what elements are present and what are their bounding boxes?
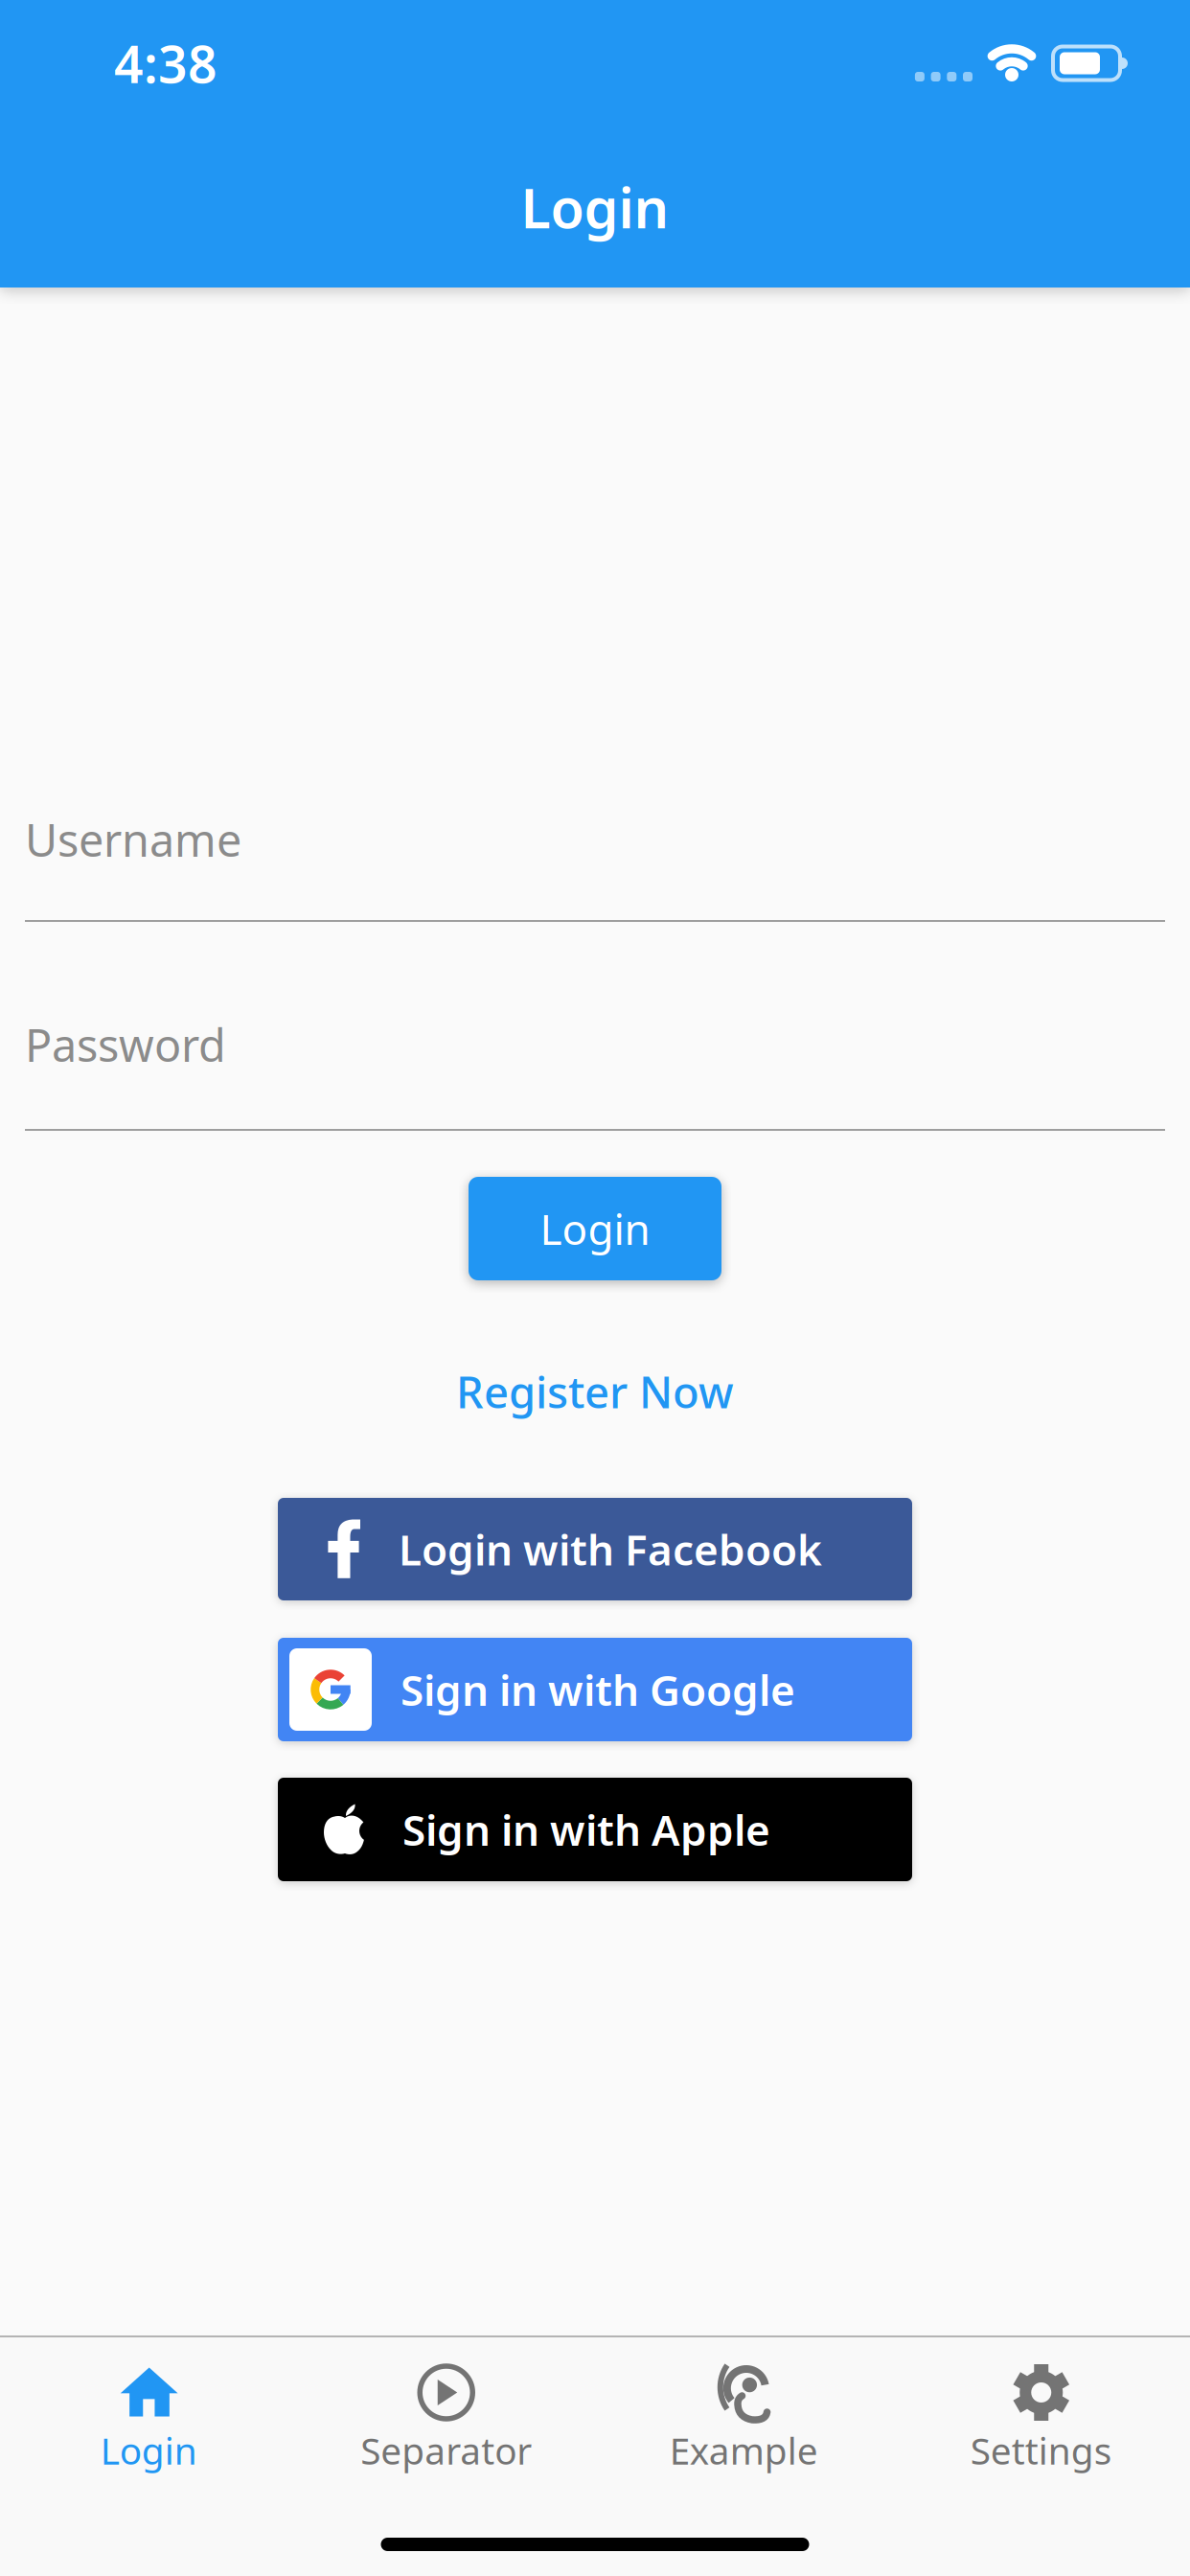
button[interactable]: Sign in with Apple <box>278 1778 912 1881</box>
button[interactable]: Username <box>0 811 1190 922</box>
button[interactable]: Sign in with Google <box>278 1638 912 1741</box>
button[interactable]: Separator <box>297 2337 595 2475</box>
staticText: Example <box>670 2426 818 2475</box>
staticText: Register Now <box>456 1363 734 1420</box>
staticText: 4:38 <box>114 29 217 97</box>
button[interactable]: Settings <box>892 2337 1190 2475</box>
staticText: Sign in with Apple <box>402 1801 770 1857</box>
button[interactable]: Login <box>0 2337 297 2475</box>
button[interactable]: Register Now <box>456 1363 734 1420</box>
staticText: Settings <box>970 2426 1112 2475</box>
staticText: Sign in with Google <box>400 1662 795 1718</box>
button[interactable]: Login with Facebook <box>278 1498 912 1600</box>
staticText: Separator <box>360 2426 532 2475</box>
button[interactable]: Password <box>0 1016 1190 1131</box>
staticText: Login with Facebook <box>399 1521 822 1577</box>
staticText: Login <box>521 170 669 243</box>
button[interactable]: Example <box>595 2337 892 2475</box>
staticText: Login <box>540 1201 650 1257</box>
staticText: Login <box>100 2426 197 2475</box>
button[interactable]: Login <box>469 1177 721 1280</box>
staticText: Username <box>25 810 241 869</box>
staticText: Password <box>25 1015 226 1074</box>
